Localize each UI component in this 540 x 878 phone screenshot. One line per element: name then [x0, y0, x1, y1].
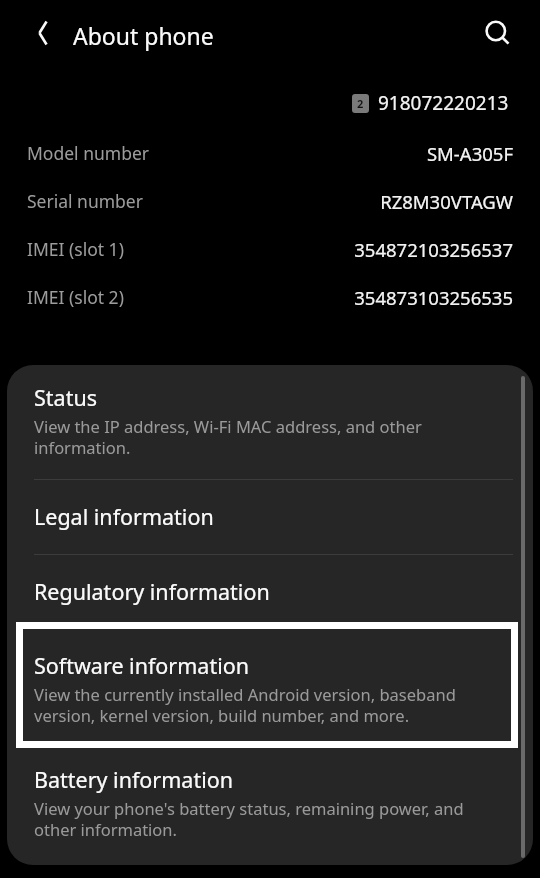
staticText: SM-A305F	[426, 141, 513, 166]
staticText: 354872103256537	[354, 237, 513, 262]
button[interactable]: Back	[20, 10, 66, 56]
staticText: Software information	[34, 651, 249, 680]
button[interactable]: Status	[7, 365, 533, 479]
staticText: About phone	[73, 20, 214, 51]
staticText: RZ8M30VTAGW	[380, 189, 513, 214]
button[interactable]: Software information	[7, 629, 533, 749]
staticText: View the IP address, Wi-Fi MAC address, …	[34, 415, 503, 459]
button[interactable]: IMEI (slot 2)	[0, 273, 540, 321]
staticText: View your phone's battery status, remain…	[34, 797, 503, 841]
staticText: 918072220213	[378, 90, 509, 116]
button[interactable]: 2	[0, 85, 540, 121]
staticText: Model number	[27, 141, 426, 165]
staticText: IMEI (slot 2)	[27, 285, 354, 309]
button[interactable]: Search	[474, 10, 520, 56]
button[interactable]: Model number	[0, 129, 540, 177]
button[interactable]: Battery information	[7, 749, 533, 861]
staticText: 2	[357, 96, 364, 111]
button[interactable]: Legal information	[7, 480, 533, 554]
button[interactable]: Regulatory information	[7, 555, 533, 629]
button[interactable]: Serial number	[0, 177, 540, 225]
staticText: IMEI (slot 1)	[27, 237, 354, 261]
staticText: Regulatory information	[34, 577, 270, 606]
staticText: 354873103256535	[354, 285, 513, 310]
staticText: Battery information	[34, 765, 234, 794]
button[interactable]: IMEI (slot 1)	[0, 225, 540, 273]
staticText: Serial number	[27, 189, 380, 213]
staticText: View the currently installed Android ver…	[34, 683, 503, 727]
staticText: Legal information	[34, 502, 214, 531]
staticText: Status	[34, 383, 97, 412]
